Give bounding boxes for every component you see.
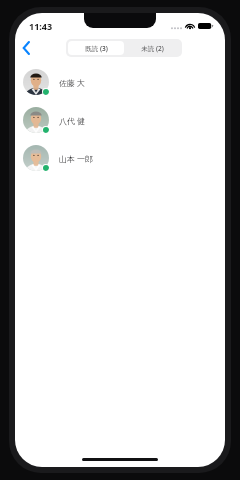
button[interactable]: 山本 一郎 (15, 139, 225, 177)
button[interactable]: 未読 (2) (124, 41, 180, 55)
staticText: 既読 (3) (85, 44, 108, 53)
staticText: 山本 一郎 (59, 153, 94, 164)
staticText: 八代 健 (59, 115, 86, 126)
button[interactable]: Back (15, 37, 37, 59)
button[interactable]: 八代 健 (15, 101, 225, 139)
staticText: 佐藤 大 (59, 77, 86, 88)
button[interactable]: 佐藤 大 (15, 63, 225, 101)
staticText: 11:43 (29, 20, 53, 32)
button[interactable]: 既読 (3) (68, 41, 124, 55)
staticText: 未読 (2) (141, 44, 164, 53)
